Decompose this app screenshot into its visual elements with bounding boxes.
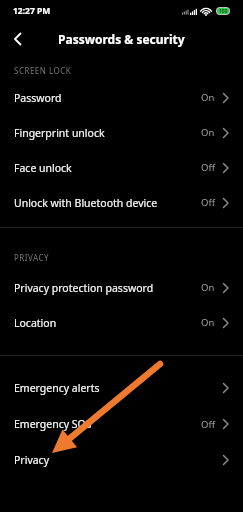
staticText: Off (201, 418, 215, 431)
staticText: On (201, 316, 215, 329)
staticText: PRIVACY (14, 252, 50, 263)
staticText: On (201, 126, 215, 139)
staticText: Privacy (14, 453, 50, 467)
staticText: On (201, 91, 215, 104)
button[interactable]: Face unlock (0, 150, 243, 185)
button[interactable] (8, 29, 28, 49)
staticText: Unlock with Bluetooth device (14, 196, 158, 210)
button[interactable]: Emergency alerts (0, 370, 243, 406)
button[interactable]: Location (0, 305, 243, 340)
staticText: Password (14, 91, 62, 105)
staticText: Off (201, 161, 215, 174)
button[interactable]: Password (0, 80, 243, 115)
staticText: Off (201, 196, 215, 209)
staticText: Emergency alerts (14, 381, 100, 395)
button[interactable]: Fingerprint unlock (0, 115, 243, 150)
staticText: SCREEN LOCK (14, 65, 72, 76)
staticText: Emergency SOS (14, 417, 92, 431)
staticText: Face unlock (14, 161, 72, 175)
button[interactable]: Emergency SOS (0, 406, 243, 442)
button[interactable]: Unlock with Bluetooth device (0, 185, 243, 220)
staticText: Privacy protection password (14, 281, 154, 295)
staticText: Passwords & security (58, 31, 185, 47)
button[interactable]: Privacy (0, 442, 243, 478)
staticText: On (201, 281, 215, 294)
staticText: 100 (219, 8, 228, 14)
staticText: Location (14, 316, 57, 330)
button[interactable]: Privacy protection password (0, 270, 243, 305)
staticText: 12:27 PM (13, 5, 51, 17)
staticText: Fingerprint unlock (14, 126, 105, 140)
